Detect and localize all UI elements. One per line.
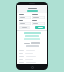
button[interactable] [19,26,30,29]
button[interactable] [35,26,45,29]
button[interactable] [19,22,31,25]
button[interactable] [19,58,45,61]
button[interactable] [19,16,31,19]
button[interactable] [32,22,45,25]
button[interactable] [19,52,45,55]
button[interactable] [19,61,45,64]
button[interactable] [27,10,38,12]
button[interactable] [19,49,45,52]
button[interactable] [32,16,45,19]
button[interactable]: Home [31,66,34,69]
button[interactable] [19,55,45,58]
